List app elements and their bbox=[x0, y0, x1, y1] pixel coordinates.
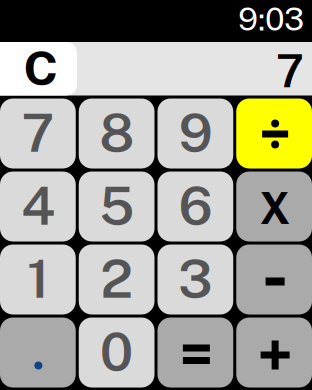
staticText: 0 bbox=[100, 320, 134, 383]
button[interactable]: 6 bbox=[157, 171, 233, 241]
staticText: 9 bbox=[178, 101, 212, 164]
button[interactable]: 1 bbox=[0, 244, 76, 314]
staticText: 7 bbox=[276, 44, 304, 97]
button[interactable]: Decimal point bbox=[0, 317, 76, 387]
button[interactable]: 3 bbox=[157, 244, 233, 314]
staticText: 1 bbox=[27, 247, 49, 310]
button[interactable]: Minus bbox=[236, 244, 312, 314]
staticText: 9:03 bbox=[238, 0, 304, 38]
staticText: 2 bbox=[100, 247, 133, 310]
button[interactable]: 4 bbox=[0, 171, 76, 241]
button[interactable]: 0 bbox=[79, 317, 155, 387]
button[interactable]: C bbox=[0, 42, 77, 95]
button[interactable]: 8 bbox=[79, 98, 155, 168]
button[interactable]: 9 bbox=[157, 98, 233, 168]
button[interactable]: Divide bbox=[236, 98, 312, 168]
staticText: 3 bbox=[178, 247, 213, 310]
staticText: 7 bbox=[21, 101, 54, 164]
button[interactable]: Plus bbox=[236, 317, 312, 387]
button[interactable]: 7 bbox=[0, 98, 76, 168]
button[interactable]: Multiply bbox=[236, 171, 312, 241]
button[interactable]: 5 bbox=[79, 171, 155, 241]
staticText: 8 bbox=[99, 101, 134, 164]
staticText: 5 bbox=[99, 174, 134, 237]
staticText: 4 bbox=[21, 174, 55, 237]
button[interactable]: Equals bbox=[157, 317, 233, 387]
button[interactable]: 2 bbox=[79, 244, 155, 314]
staticText: C bbox=[23, 40, 57, 96]
staticText: 6 bbox=[178, 174, 212, 237]
staticText: X bbox=[260, 183, 291, 233]
